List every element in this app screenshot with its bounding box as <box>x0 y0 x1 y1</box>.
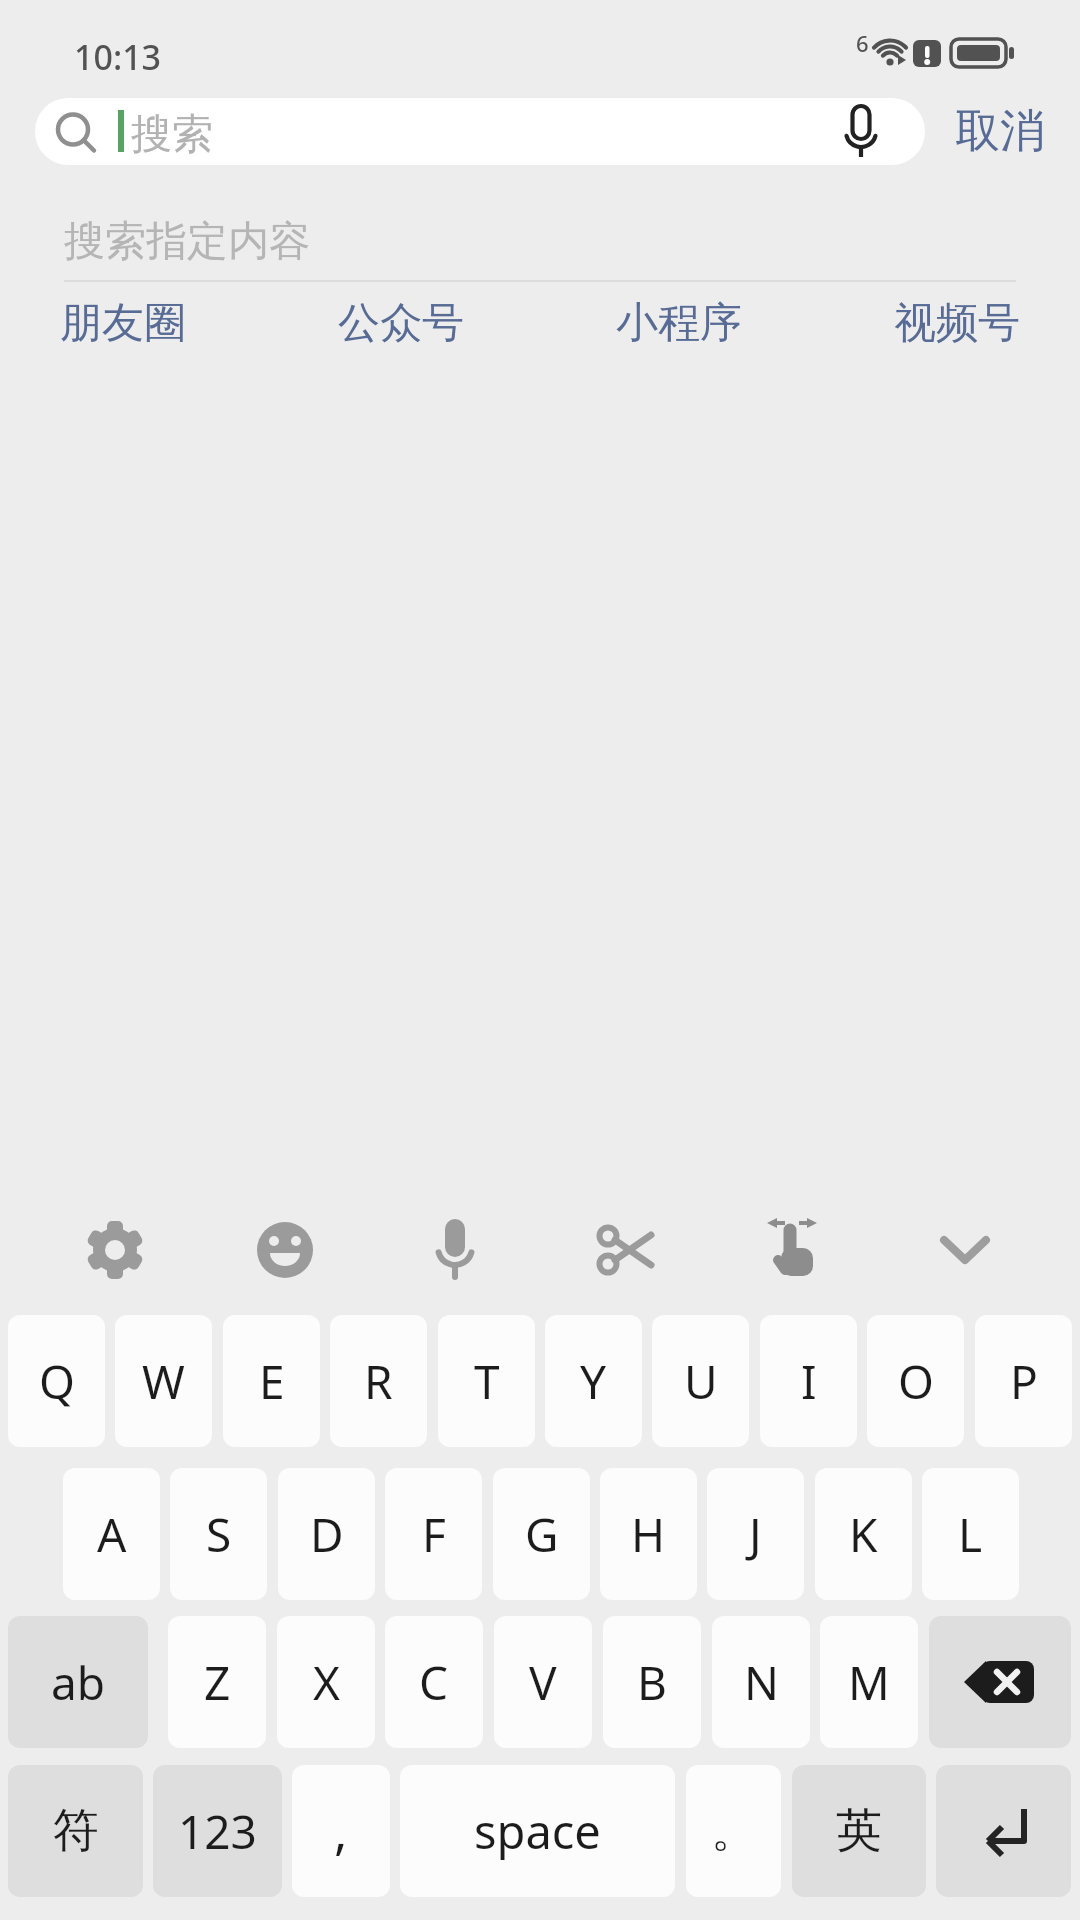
staticText: N <box>744 1651 779 1714</box>
button[interactable]: N <box>712 1616 810 1748</box>
staticText: 。 <box>711 1802 757 1860</box>
staticText: K <box>849 1503 878 1566</box>
staticText: 取消 <box>955 103 1045 160</box>
staticText: O <box>898 1350 934 1413</box>
staticText: 搜索 <box>131 109 213 161</box>
staticText: F <box>422 1503 446 1566</box>
staticText: Q <box>39 1350 75 1413</box>
button[interactable] <box>936 1765 1071 1897</box>
staticText: 符 <box>53 1802 99 1860</box>
button[interactable] <box>587 1212 663 1288</box>
button[interactable]: G <box>493 1468 590 1600</box>
staticText: 英 <box>836 1802 882 1860</box>
button[interactable]: T <box>438 1315 535 1447</box>
button[interactable]: X <box>277 1616 375 1748</box>
button[interactable]: L <box>922 1468 1019 1600</box>
staticText: A <box>97 1503 127 1566</box>
button[interactable]: C <box>385 1616 483 1748</box>
button[interactable] <box>77 1212 153 1288</box>
staticText: Z <box>204 1651 231 1714</box>
button[interactable]: J <box>707 1468 804 1600</box>
staticText: V <box>529 1651 557 1714</box>
button[interactable]: V <box>494 1616 592 1748</box>
staticText: 公众号 <box>338 297 464 350</box>
staticText: ab <box>51 1651 106 1714</box>
button[interactable]: 朋友圈 <box>60 297 186 350</box>
staticText: L <box>958 1503 983 1566</box>
button[interactable]: 公众号 <box>338 297 464 350</box>
button[interactable]: ab <box>8 1616 148 1748</box>
button[interactable]: A <box>63 1468 160 1600</box>
button[interactable]: 。 <box>686 1765 781 1897</box>
button[interactable]: H <box>600 1468 697 1600</box>
staticText: R <box>364 1350 393 1413</box>
staticText: , <box>334 1797 348 1865</box>
staticText: space <box>474 1799 601 1863</box>
staticText: 搜索指定内容 <box>64 216 310 268</box>
button[interactable]: F <box>385 1468 482 1600</box>
staticText: C <box>419 1651 449 1714</box>
button[interactable]: 英 <box>792 1765 926 1897</box>
button[interactable]: 搜索 <box>35 98 925 165</box>
button[interactable] <box>757 1212 833 1288</box>
button[interactable] <box>929 1616 1071 1748</box>
button[interactable]: Q <box>8 1315 105 1447</box>
button[interactable]: 123 <box>153 1765 282 1897</box>
button[interactable]: Z <box>168 1616 266 1748</box>
button[interactable]: B <box>603 1616 701 1748</box>
button[interactable]: D <box>278 1468 375 1600</box>
button[interactable] <box>839 103 883 161</box>
staticText: S <box>206 1503 232 1566</box>
staticText: 视频号 <box>894 297 1020 350</box>
button[interactable]: 取消 <box>940 98 1060 165</box>
button[interactable]: R <box>330 1315 427 1447</box>
staticText: Y <box>580 1350 607 1413</box>
button[interactable]: S <box>170 1468 267 1600</box>
staticText: D <box>310 1503 344 1566</box>
staticText: H <box>631 1503 666 1566</box>
staticText: 小程序 <box>616 297 742 350</box>
staticText: U <box>684 1350 718 1413</box>
staticText: B <box>637 1651 667 1714</box>
button[interactable]: P <box>975 1315 1072 1447</box>
button[interactable]: space <box>400 1765 675 1897</box>
staticText: W <box>142 1350 185 1413</box>
staticText: 10:13 <box>74 34 162 80</box>
staticText: I <box>801 1350 817 1413</box>
button[interactable] <box>927 1212 1003 1288</box>
staticText: G <box>525 1503 559 1566</box>
staticText: T <box>474 1350 500 1413</box>
button[interactable]: 视频号 <box>894 297 1020 350</box>
button[interactable]: 符 <box>8 1765 143 1897</box>
staticText: M <box>848 1651 890 1714</box>
staticText: 123 <box>178 1800 257 1863</box>
staticText: 6 <box>856 28 869 58</box>
button[interactable]: E <box>223 1315 320 1447</box>
staticText: X <box>313 1651 340 1714</box>
button[interactable]: Y <box>545 1315 642 1447</box>
staticText: J <box>749 1503 762 1566</box>
staticText: E <box>259 1350 285 1413</box>
button[interactable] <box>247 1212 323 1288</box>
button[interactable]: , <box>292 1765 390 1897</box>
button[interactable]: O <box>867 1315 964 1447</box>
button[interactable]: M <box>820 1616 918 1748</box>
staticText: 朋友圈 <box>60 297 186 350</box>
button[interactable] <box>417 1212 493 1288</box>
staticText: P <box>1010 1350 1038 1413</box>
button[interactable]: W <box>115 1315 212 1447</box>
button[interactable]: K <box>815 1468 912 1600</box>
button[interactable]: 小程序 <box>616 297 742 350</box>
button[interactable]: I <box>760 1315 857 1447</box>
button[interactable]: U <box>652 1315 749 1447</box>
